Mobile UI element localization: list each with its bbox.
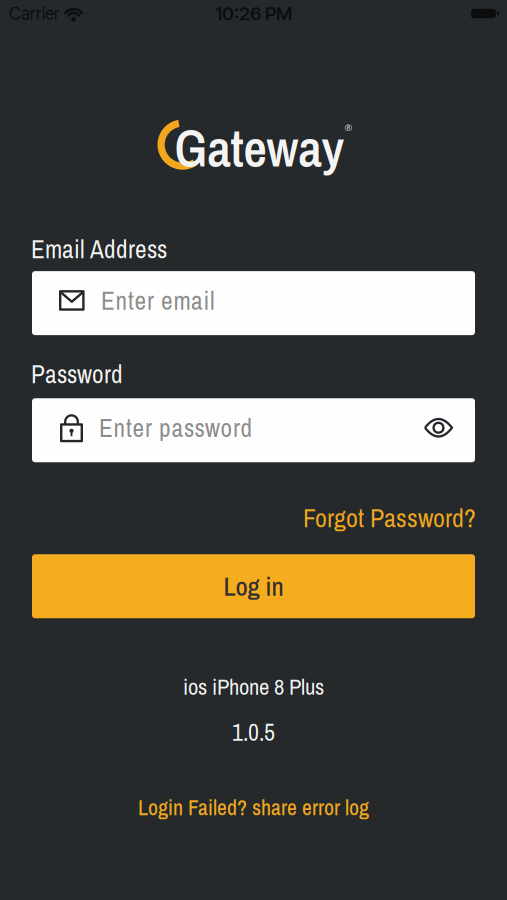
staticText: ios iPhone 8 Plus [183,671,324,702]
staticText: Enter password [99,411,252,445]
staticText: Log in [223,569,283,604]
button[interactable]: Forgot Password? [303,500,476,535]
staticText: 10:26 PM [215,2,292,25]
staticText: Gateway [174,113,344,182]
staticText: Password [31,357,123,391]
staticText: Login Failed? share error log [138,793,369,822]
staticText: 1.0.5 [232,716,275,748]
staticText: Enter email [101,284,215,318]
button[interactable]: Log in [32,554,475,618]
staticText: Carrier [9,3,60,24]
button[interactable]: Enter password [32,398,475,462]
staticText: Email Address [31,232,167,266]
button[interactable] [424,418,453,438]
button[interactable]: Enter email [32,271,475,335]
staticText: Forgot Password? [303,500,476,535]
button[interactable]: Login Failed? share error log [138,793,369,822]
staticText: ® [344,121,352,134]
